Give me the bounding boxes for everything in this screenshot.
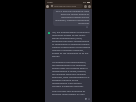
button[interactable]: GPT-4 and the Multiverse: How does the c… bbox=[53, 9, 90, 26]
button[interactable]: Reload bbox=[84, 5, 87, 8]
staticText: Yes, the interpretation of quantum mecha… bbox=[52, 31, 90, 58]
button[interactable]: chat.openai.com/c/4f2a bbox=[50, 4, 83, 8]
staticText: According to the interpretation, the wav… bbox=[52, 61, 90, 88]
button[interactable]: More options bbox=[88, 5, 91, 8]
button[interactable]: Account bbox=[46, 5, 49, 8]
button[interactable]: Copy bbox=[85, 98, 87, 100]
staticText: chat.openai.com/c/4f2a bbox=[54, 5, 77, 8]
button[interactable]: Good response bbox=[88, 98, 90, 100]
staticText: GPT-4 and the Multiverse: How does the c… bbox=[54, 10, 89, 25]
button[interactable]: Edit message bbox=[86, 26, 88, 28]
staticText: 12:45 bbox=[47, 1, 53, 4]
staticText: The MWI was first proposed by physicist … bbox=[52, 90, 90, 96]
staticText: 4G bbox=[83, 1, 86, 4]
